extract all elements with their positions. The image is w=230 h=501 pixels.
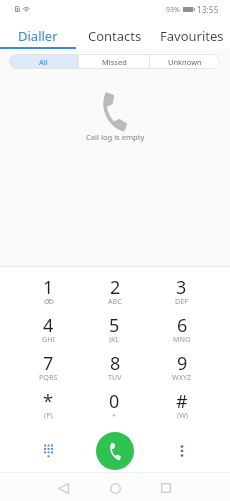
button[interactable]: 6 — [148, 305, 215, 343]
staticText: Favourites — [160, 27, 224, 45]
staticText: Missed — [102, 57, 127, 67]
button[interactable]: Call — [96, 432, 134, 470]
button[interactable]: Missed — [79, 54, 149, 69]
button[interactable]: 2 — [81, 267, 148, 305]
staticText: GHI — [42, 334, 55, 343]
staticText: TUV — [108, 372, 122, 381]
staticText: 8 — [110, 351, 121, 376]
staticText: (W) — [177, 410, 188, 419]
staticText: PQRS — [39, 372, 58, 381]
button[interactable]: 8 — [81, 343, 148, 381]
button[interactable]: * — [15, 381, 81, 419]
staticText: DEF — [175, 296, 188, 305]
staticText: Dialler — [18, 27, 58, 45]
button[interactable]: Show dialpad — [15, 429, 81, 472]
button[interactable]: 5 — [81, 305, 148, 343]
button[interactable]: 7 — [15, 343, 81, 381]
staticText: * — [43, 389, 53, 414]
staticText: # — [176, 389, 188, 414]
staticText: Contacts — [88, 27, 142, 45]
staticText: MNO — [173, 334, 191, 343]
button[interactable]: Contacts — [76, 18, 153, 49]
staticText: 13:55 — [197, 4, 219, 15]
staticText: JKL — [109, 334, 120, 343]
button[interactable]: Dialler — [0, 18, 76, 49]
staticText: ABC — [108, 296, 122, 305]
staticText: 2 — [110, 275, 121, 300]
button[interactable]: 0 — [81, 381, 148, 419]
staticText: 9 — [177, 351, 188, 376]
staticText: 3 — [176, 275, 187, 300]
button[interactable]: # — [148, 381, 215, 419]
button[interactable]: 4 — [15, 305, 81, 343]
staticText: 93% — [166, 5, 180, 15]
button[interactable]: 3 — [148, 267, 215, 305]
staticText: All — [39, 57, 48, 67]
staticText: 7 — [43, 351, 54, 376]
button[interactable]: Recent apps — [153, 475, 179, 501]
staticText: (P) — [44, 410, 53, 419]
button[interactable]: Unknown — [150, 54, 220, 69]
staticText: 0 — [109, 389, 120, 414]
staticText: Call log is empty — [86, 132, 145, 142]
staticText: 4 — [43, 313, 54, 338]
button[interactable]: All — [9, 54, 78, 69]
button[interactable]: Favourites — [153, 18, 230, 49]
button[interactable]: More options — [148, 429, 215, 472]
staticText: 5 — [109, 313, 120, 338]
staticText: 1 — [43, 275, 54, 300]
button[interactable]: Home — [102, 475, 128, 501]
button[interactable]: Back — [50, 475, 76, 501]
staticText: + — [112, 410, 117, 419]
staticText: WXYZ — [172, 372, 192, 381]
button[interactable]: 1 — [15, 267, 81, 305]
staticText: Unknown — [168, 57, 202, 67]
staticText: 6 — [177, 313, 188, 338]
button[interactable]: 9 — [148, 343, 215, 381]
